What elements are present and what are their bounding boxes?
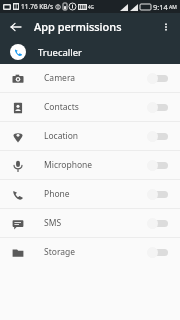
button[interactable]: Toggle permission: [145, 245, 169, 259]
staticText: Truecaller: [38, 46, 83, 59]
button[interactable]: Toggle permission: [145, 100, 169, 114]
button[interactable]: Toggle permission: [145, 71, 169, 85]
button[interactable]: Phone: [0, 180, 180, 208]
staticText: 4G: [88, 4, 94, 10]
staticText: SMS: [44, 217, 62, 229]
staticText: Camera: [44, 72, 75, 84]
staticText: Phone: [44, 188, 70, 200]
staticText: App permissions: [34, 19, 122, 34]
button[interactable]: Storage: [0, 238, 180, 266]
staticText: Storage: [44, 246, 76, 258]
button[interactable]: Toggle permission: [145, 216, 169, 230]
button[interactable]: Toggle permission: [145, 129, 169, 143]
button[interactable]: Toggle permission: [145, 187, 169, 201]
button[interactable]: Toggle permission: [145, 158, 169, 172]
staticText: Contacts: [44, 101, 79, 113]
button[interactable]: Camera: [0, 64, 180, 92]
button[interactable]: More options: [155, 16, 177, 38]
staticText: 9:14: [153, 2, 168, 12]
button[interactable]: Contacts: [0, 93, 180, 121]
button[interactable]: Truecaller: [0, 40, 180, 64]
staticText: AM: [169, 4, 177, 11]
staticText: Microphone: [44, 159, 93, 171]
button[interactable]: SMS: [0, 209, 180, 237]
staticText: 11.76 KB/s: [21, 2, 54, 11]
button[interactable]: Location: [0, 122, 180, 150]
button[interactable]: Back: [4, 15, 28, 39]
staticText: Location: [44, 130, 79, 142]
button[interactable]: Microphone: [0, 151, 180, 179]
